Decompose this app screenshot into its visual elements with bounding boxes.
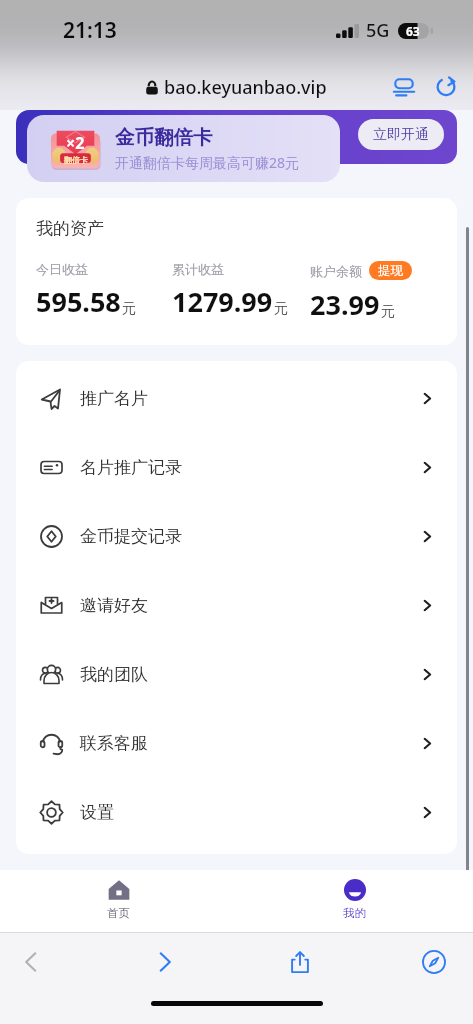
staticText: bao.keyuanbao.vip [164, 75, 327, 100]
staticText: 元 [381, 303, 395, 321]
staticText: 元 [122, 300, 136, 318]
staticText: 翻倍卡 [64, 155, 88, 165]
button[interactable]: 金币提交记录 [16, 502, 457, 571]
staticText: 我的团队 [80, 664, 148, 685]
button[interactable]: 设置 [16, 778, 457, 847]
staticText: 首页 [107, 906, 130, 920]
button[interactable]: 推广名片 [16, 364, 457, 433]
staticText: 名片推广记录 [80, 457, 182, 478]
staticText: 元 [274, 300, 288, 318]
staticText: 账户余额 [310, 263, 362, 279]
button[interactable]: 我的 [236, 870, 473, 932]
staticText: 联系客服 [80, 733, 148, 754]
staticText: 今日收益 [36, 261, 88, 277]
button[interactable]: 我的团队 [16, 640, 457, 709]
staticText: 23.99 [310, 286, 380, 323]
staticText: 设置 [80, 802, 114, 823]
button[interactable]: 邀请好友 [16, 571, 457, 640]
button[interactable]: Reload [431, 72, 461, 102]
staticText: 21:13 [63, 16, 117, 45]
button[interactable]: Tabs [412, 933, 456, 990]
staticText: 63 [406, 23, 420, 39]
button[interactable] [16, 110, 457, 164]
staticText: 金币提交记录 [80, 526, 182, 547]
staticText: 立即开通 [373, 126, 429, 144]
button[interactable]: Page settings [389, 72, 419, 102]
staticText: 5G [366, 18, 390, 43]
staticText: 我的 [343, 906, 366, 920]
button[interactable]: 名片推广记录 [16, 433, 457, 502]
button[interactable]: 立即开通 [358, 119, 444, 150]
staticText: ×2 [66, 132, 85, 154]
button[interactable]: 首页 [0, 870, 236, 932]
staticText: 推广名片 [80, 388, 148, 409]
staticText: 我的资产 [36, 218, 104, 239]
button[interactable]: 提现 [369, 261, 412, 280]
staticText: 金币翻倍卡 [115, 125, 213, 150]
button[interactable]: Forward [143, 933, 187, 990]
staticText: 提现 [378, 263, 403, 279]
staticText: 开通翻倍卡每周最高可赚28元 [115, 153, 300, 172]
button[interactable]: Back [9, 933, 53, 990]
staticText: 1279.99 [172, 283, 273, 320]
button[interactable]: Share [278, 933, 322, 990]
staticText: 累计收益 [172, 261, 224, 277]
button[interactable]: 联系客服 [16, 709, 457, 778]
staticText: 邀请好友 [80, 595, 148, 616]
staticText: 595.58 [36, 283, 121, 320]
